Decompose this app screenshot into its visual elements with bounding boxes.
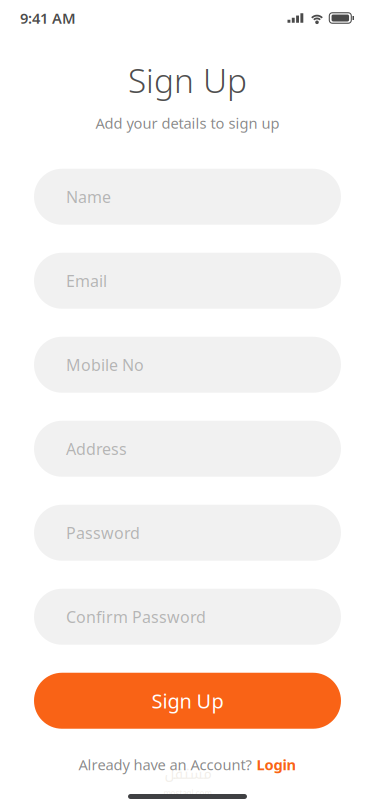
button[interactable]: Already have an Account? Login xyxy=(68,749,306,780)
staticText: 9:41 AM xyxy=(20,8,76,28)
staticText: Already have an Account? xyxy=(78,755,251,774)
button[interactable]: Password xyxy=(34,505,341,561)
button[interactable]: Email xyxy=(34,253,341,309)
staticText: Mobile No xyxy=(66,354,144,375)
staticText: Email xyxy=(66,270,107,291)
staticText: Login xyxy=(256,755,296,774)
staticText: Name xyxy=(66,186,111,207)
staticText: Address xyxy=(66,438,127,459)
button[interactable]: Confirm Password xyxy=(34,589,341,645)
staticText: مستقل xyxy=(164,760,211,788)
staticText: Sign Up xyxy=(128,58,247,102)
button[interactable]: Name xyxy=(34,169,341,225)
staticText: Add your details to sign up xyxy=(95,113,279,133)
button[interactable]: Mobile No xyxy=(34,337,341,393)
button[interactable]: Sign Up xyxy=(34,673,341,729)
button[interactable]: Address xyxy=(34,421,341,477)
staticText: Confirm Password xyxy=(66,606,206,627)
staticText: mostaql.com xyxy=(163,788,211,798)
staticText: Password xyxy=(66,522,140,543)
staticText: Sign Up xyxy=(151,687,223,714)
